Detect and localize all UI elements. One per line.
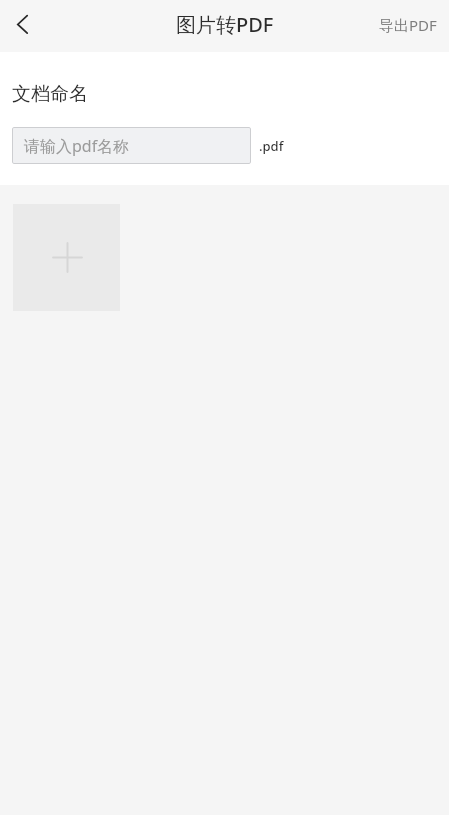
staticText: 请输入pdf名称 <box>24 135 130 157</box>
button[interactable]: Back <box>0 0 44 52</box>
button[interactable]: 导出PDF <box>367 1 449 49</box>
staticText: .pdf <box>259 137 284 155</box>
staticText: 文档命名 <box>12 82 88 106</box>
button[interactable]: 请输入pdf名称 <box>12 127 251 164</box>
staticText: 图片转PDF <box>176 11 274 38</box>
staticText: 导出PDF <box>379 15 437 35</box>
